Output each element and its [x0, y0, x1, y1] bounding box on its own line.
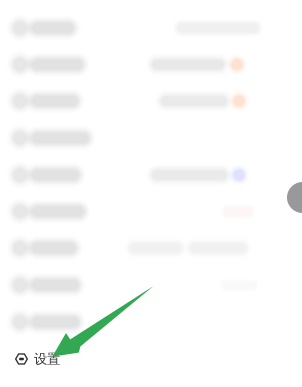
button[interactable]	[0, 157, 302, 193]
button[interactable]: Quick action	[287, 182, 302, 213]
button[interactable]	[0, 10, 302, 46]
button[interactable]	[0, 267, 302, 303]
button[interactable]	[0, 193, 302, 229]
button[interactable]	[0, 120, 302, 156]
button[interactable]	[0, 230, 302, 266]
button[interactable]	[0, 304, 302, 340]
button[interactable]	[0, 83, 302, 119]
button[interactable]: 设置	[0, 345, 302, 373]
staticText: 设置	[34, 351, 60, 367]
button[interactable]	[0, 46, 302, 82]
